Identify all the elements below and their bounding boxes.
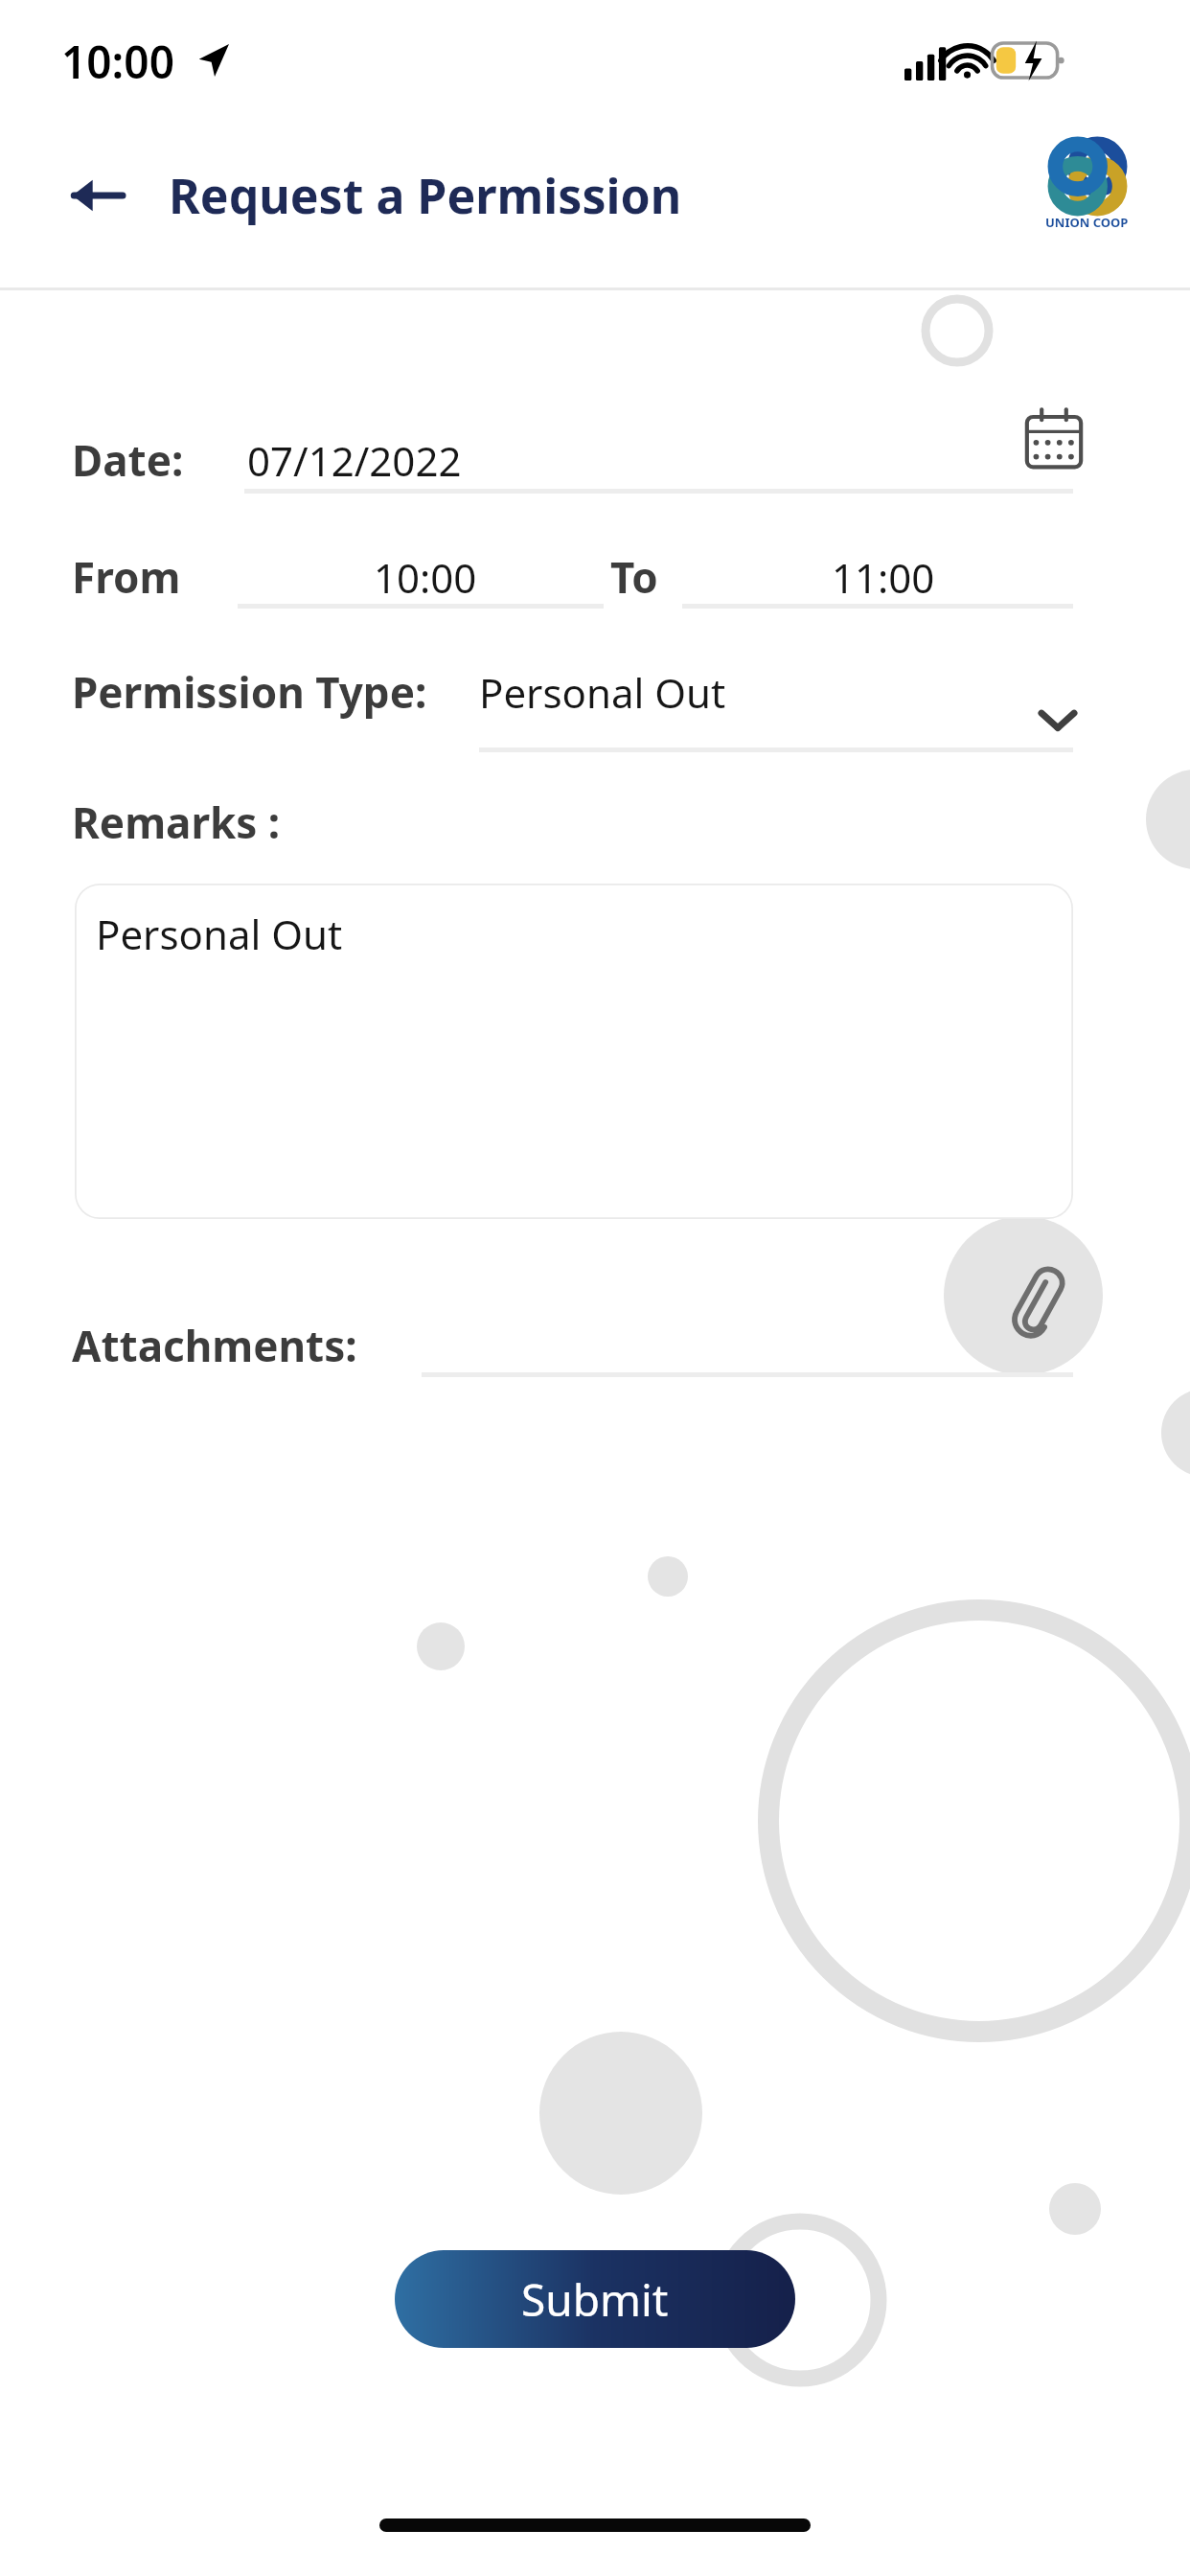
button[interactable]: Submit xyxy=(395,2250,795,2348)
button[interactable]: Personal Out xyxy=(75,884,1073,1219)
staticText: UNION COOP xyxy=(1045,214,1129,231)
button[interactable]: Add attachment xyxy=(992,1257,1078,1344)
staticText: Submit xyxy=(521,2269,669,2330)
staticText: Permission Type: xyxy=(72,663,427,721)
staticText: Personal Out xyxy=(479,665,726,720)
staticText: Request a Permission xyxy=(169,163,682,228)
button[interactable]: Union Coop logo xyxy=(1045,139,1156,250)
staticText: 07/12/2022 xyxy=(247,433,462,488)
staticText: Date: xyxy=(72,431,184,489)
button[interactable]: Pick date xyxy=(1016,401,1092,477)
button[interactable]: Back xyxy=(59,158,134,233)
staticText: To xyxy=(610,548,658,606)
staticText: From xyxy=(72,548,181,606)
staticText: 10:00 xyxy=(374,550,477,605)
staticText: Personal Out xyxy=(96,907,343,961)
staticText: Remarks : xyxy=(72,793,281,851)
staticText: 11:00 xyxy=(832,550,935,605)
staticText: 10:00 xyxy=(61,32,174,92)
staticText: Attachments: xyxy=(72,1317,357,1374)
button[interactable]: Select permission type xyxy=(1023,685,1092,754)
